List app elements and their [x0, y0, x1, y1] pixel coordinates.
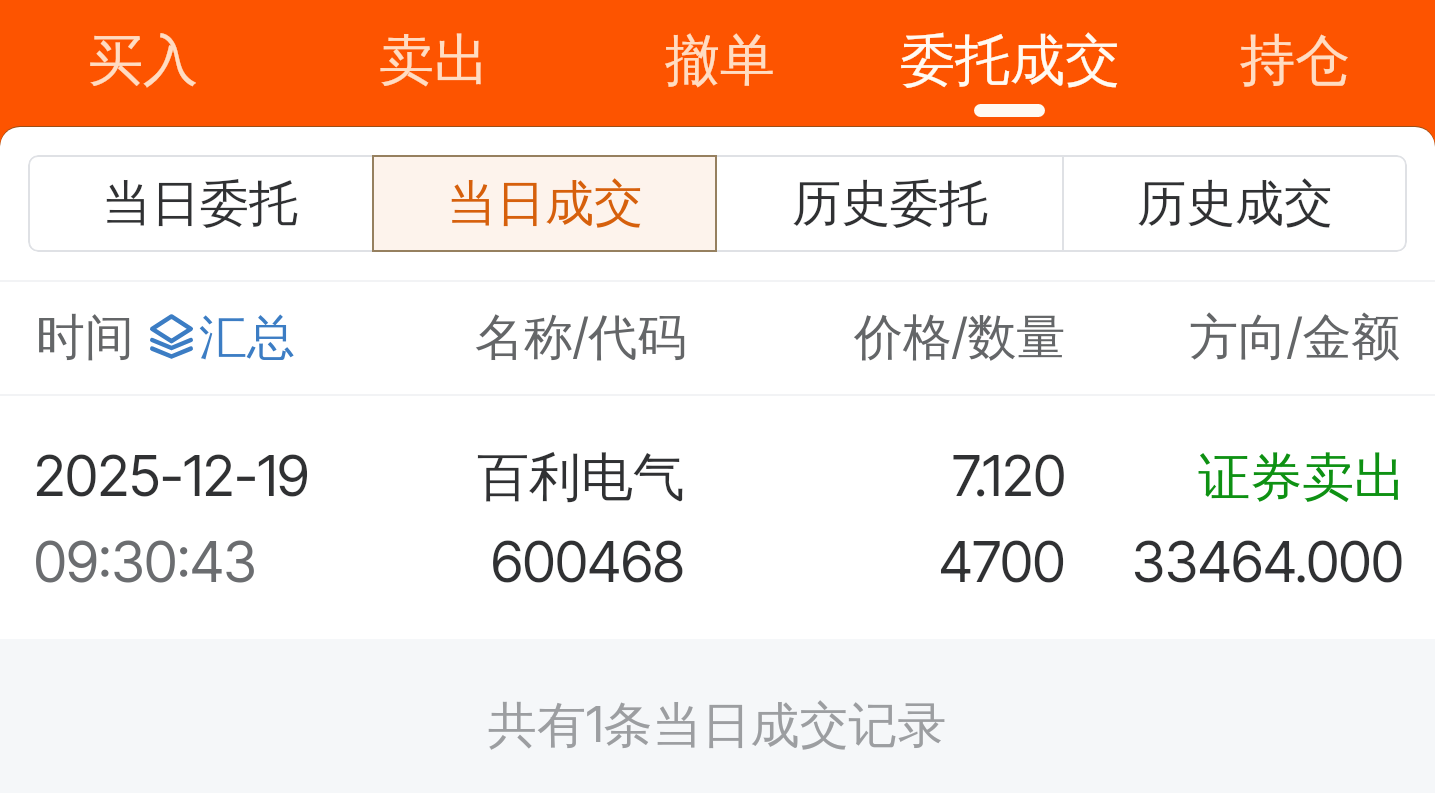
staticText: 600468	[491, 528, 685, 596]
button[interactable]: 当日委托	[28, 155, 372, 252]
staticText: 2025-12-19	[34, 442, 310, 510]
staticText: 买入	[88, 26, 198, 95]
button[interactable]: 卖出	[309, 0, 559, 126]
other: 汇总	[150, 316, 193, 361]
staticText: 百利电气	[477, 445, 685, 511]
staticText: 33464.000	[1132, 528, 1404, 596]
button[interactable]: 汇总	[150, 308, 295, 368]
staticText: 撤单	[665, 26, 775, 95]
staticText: 历史委托	[792, 173, 988, 235]
staticText: 7.120	[952, 442, 1066, 510]
button[interactable]: 买入	[18, 0, 268, 126]
button[interactable]: 2025-12-19	[0, 396, 1435, 639]
staticText: 当日成交	[447, 173, 643, 235]
button[interactable]: 当日成交	[372, 155, 717, 252]
staticText: 证券卖出	[1198, 445, 1406, 511]
staticText: 名称/代码	[475, 307, 687, 369]
staticText: 卖出	[379, 26, 489, 95]
staticText: 委托成交	[900, 26, 1120, 95]
button[interactable]: 撤单	[595, 0, 845, 126]
button[interactable]: 委托成交	[885, 0, 1135, 126]
staticText: 持仓	[1240, 26, 1350, 95]
staticText: 方向/金额	[1189, 307, 1401, 369]
button[interactable]: 持仓	[1170, 0, 1420, 126]
button[interactable]: 历史委托	[717, 155, 1062, 252]
staticText: 价格/数量	[854, 307, 1066, 369]
staticText: 4700	[939, 528, 1066, 596]
staticText: 当日委托	[102, 173, 298, 235]
staticText: 共有1条当日成交记录	[488, 695, 947, 757]
staticText: 09:30:43	[34, 528, 257, 596]
button[interactable]: 历史成交	[1062, 155, 1407, 252]
staticText: 时间	[36, 307, 134, 369]
staticText: 汇总	[199, 308, 295, 368]
staticText: 历史成交	[1137, 173, 1333, 235]
